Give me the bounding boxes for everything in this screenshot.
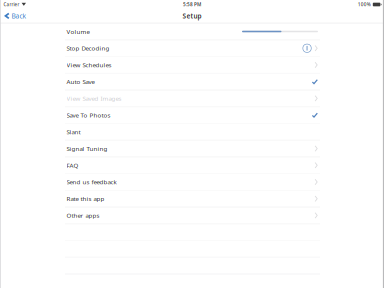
staticText: Carrier (4, 1, 20, 7)
staticText: Signal Tuning (67, 144, 108, 153)
button[interactable]: Save To Photos (65, 107, 320, 124)
button[interactable]: Auto Save (65, 74, 320, 90)
button[interactable]: Rate this app (65, 191, 320, 207)
staticText: View Saved Images (67, 94, 122, 103)
staticText: Setup (182, 11, 201, 20)
button[interactable]: View Schedules (65, 57, 320, 74)
staticText: Stop Decoding (67, 44, 110, 52)
button[interactable]: View Saved Images (65, 90, 320, 107)
staticText: Auto Save (67, 77, 95, 86)
staticText: View Schedules (67, 61, 112, 69)
staticText: Volume (67, 27, 90, 36)
staticText: Other apps (67, 211, 100, 220)
staticText: Save To Photos (67, 111, 111, 119)
button[interactable]: Stop Decoding (65, 40, 320, 57)
staticText: Rate this app (67, 194, 105, 203)
button[interactable]: Signal Tuning (65, 140, 320, 157)
staticText: FAQ (67, 161, 79, 169)
staticText: Slant (67, 128, 81, 136)
staticText: Back (12, 11, 27, 20)
staticText: 100% (358, 1, 371, 8)
button[interactable]: Send us feedback (65, 174, 320, 191)
button[interactable]: Volume (65, 23, 320, 40)
button[interactable]: Slant (65, 124, 320, 140)
button[interactable]: Other apps (65, 207, 320, 224)
button[interactable]: FAQ (65, 157, 320, 174)
staticText: Send us feedback (67, 178, 117, 186)
button[interactable]: Back (0, 9, 32, 23)
staticText: 5:58 PM (183, 1, 201, 8)
